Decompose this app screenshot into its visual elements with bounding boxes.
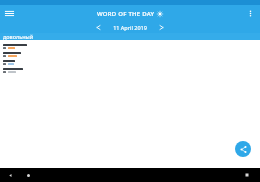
button[interactable]: Next day bbox=[156, 22, 167, 33]
button[interactable]: Recent apps bbox=[241, 169, 253, 181]
staticText: довольный bbox=[3, 33, 34, 40]
staticText: 11 April 2019 bbox=[113, 24, 147, 31]
button[interactable]: Home bbox=[22, 169, 34, 181]
staticText: WORD OF THE DAY bbox=[97, 10, 155, 18]
button[interactable]: Previous day bbox=[93, 22, 104, 33]
button[interactable]: Share bbox=[235, 141, 251, 157]
button[interactable]: Back bbox=[4, 169, 16, 181]
button[interactable]: довольный bbox=[0, 33, 260, 40]
button[interactable]: More options bbox=[244, 7, 257, 20]
button[interactable]: Open navigation menu bbox=[3, 7, 16, 20]
